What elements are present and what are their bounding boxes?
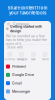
staticText: More [42, 58, 48, 61]
button[interactable]: Messages [16, 52, 28, 61]
button[interactable]: Messenger [4, 87, 51, 96]
staticText: AirDrop [4, 58, 15, 61]
staticText: We've rounded up a few tips to help you … [6, 34, 47, 46]
staticText: Messenger [12, 89, 30, 94]
staticText: Getting started with design [10, 24, 42, 33]
button[interactable]: Pinterest [4, 62, 51, 71]
button[interactable]: Google Drive [4, 71, 51, 79]
staticText: Share content from [7, 5, 47, 10]
staticText: your favorite tools [9, 10, 46, 15]
button[interactable]: Gmail [4, 79, 51, 87]
staticText: Mail [31, 58, 36, 61]
staticText: Gmail [12, 81, 22, 85]
staticText: Compose [13, 22, 29, 26]
button[interactable]: Close [6, 21, 11, 26]
staticText: Pinterest [12, 64, 26, 69]
button[interactable]: More [39, 52, 51, 61]
staticText: Google Drive [12, 73, 34, 77]
button[interactable]: AirDrop [4, 52, 16, 61]
button[interactable]: Mail [27, 52, 39, 61]
staticText: Share with [7, 46, 23, 49]
staticText: Messages [17, 58, 27, 61]
